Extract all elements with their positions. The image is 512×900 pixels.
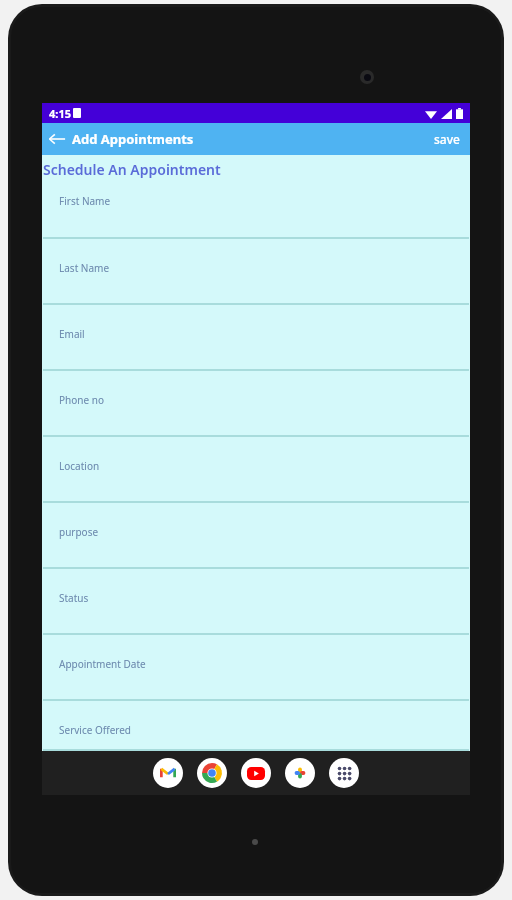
- button[interactable]: YouTube: [241, 758, 271, 788]
- other: Back: [48, 130, 66, 148]
- staticText: 4:15: [49, 106, 71, 121]
- staticText: Service Offered: [59, 723, 132, 737]
- button[interactable]: Email: [42, 305, 470, 371]
- staticText: Schedule An Appointment: [43, 160, 221, 179]
- button[interactable]: save: [424, 125, 470, 153]
- button[interactable]: Service Offered: [42, 701, 470, 751]
- button[interactable]: Last Name: [42, 239, 470, 305]
- staticText: First Name: [59, 194, 111, 208]
- staticText: Email: [59, 327, 85, 341]
- button[interactable]: Status: [42, 569, 470, 635]
- staticText: Phone no: [59, 393, 104, 407]
- button[interactable]: Google Photos: [285, 758, 315, 788]
- button[interactable]: Gmail: [153, 758, 183, 788]
- button[interactable]: Phone no: [42, 371, 470, 437]
- button[interactable]: Back: [42, 126, 202, 152]
- button[interactable]: purpose: [42, 503, 470, 569]
- staticText: purpose: [59, 525, 99, 539]
- button[interactable]: Chrome: [197, 758, 227, 788]
- button[interactable]: Appointment Date: [42, 635, 470, 701]
- staticText: Add Appointments: [72, 130, 194, 148]
- staticText: save: [434, 131, 460, 147]
- staticText: Location: [59, 459, 100, 473]
- button[interactable]: Location: [42, 437, 470, 503]
- staticText: Last Name: [59, 261, 110, 275]
- staticText: Appointment Date: [59, 657, 146, 671]
- staticText: Status: [59, 591, 89, 605]
- button[interactable]: First Name: [42, 185, 470, 239]
- button[interactable]: All apps: [329, 758, 359, 788]
